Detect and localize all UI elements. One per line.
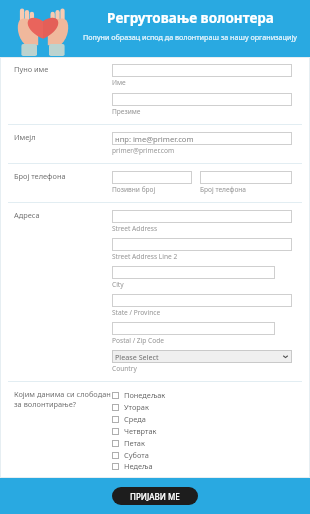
staticText: Којим данима си слободан за волонтирање?	[14, 389, 112, 409]
staticText: нпр: ime@primer.com	[115, 134, 194, 144]
button[interactable]	[112, 266, 275, 279]
button[interactable]	[200, 171, 292, 184]
staticText: Регрутовање волонтера	[107, 9, 274, 27]
staticText: Број телефона	[200, 185, 247, 194]
button[interactable]	[112, 64, 292, 77]
button[interactable]: Please Select	[112, 350, 292, 363]
staticText: Четвртак	[124, 426, 157, 436]
staticText: Country	[112, 364, 137, 373]
staticText: Адреса	[14, 210, 40, 220]
staticText: Позивни број	[112, 185, 156, 194]
button[interactable]: Понедељак	[112, 389, 302, 401]
button[interactable]: ПРИЈАВИ МЕ	[112, 487, 198, 505]
button[interactable]	[112, 210, 292, 223]
staticText: Имејл	[14, 132, 36, 142]
button[interactable]	[112, 294, 292, 307]
button[interactable]	[112, 238, 292, 251]
button[interactable]: Четвртак	[112, 425, 302, 437]
staticText: Please Select	[115, 352, 159, 362]
staticText: Уторак	[124, 402, 149, 412]
staticText: Број телефона	[14, 171, 66, 181]
staticText: Street Address Line 2	[112, 252, 178, 261]
staticText: Понедељак	[124, 390, 166, 400]
staticText: Субота	[124, 450, 149, 460]
button[interactable]: Уторак	[112, 401, 302, 413]
staticText: Петак	[124, 438, 145, 448]
staticText: Презиме	[112, 107, 141, 116]
button[interactable]: нпр: ime@primer.com	[112, 132, 292, 145]
staticText: Postal / Zip Code	[112, 336, 164, 345]
staticText: Попуни образац испод да волонтираш за на…	[83, 32, 297, 42]
button[interactable]	[112, 93, 292, 106]
button[interactable]: Недеља	[112, 461, 302, 471]
button[interactable]: Субота	[112, 449, 302, 461]
staticText: ПРИЈАВИ МЕ	[130, 491, 180, 502]
staticText: Име	[112, 78, 126, 87]
staticText: Street Address	[112, 224, 158, 233]
staticText: City	[112, 280, 124, 289]
button[interactable]: Среда	[112, 413, 302, 425]
other: Hands holding heart	[13, 2, 73, 56]
button[interactable]	[112, 322, 275, 335]
staticText: primer@primer.com	[112, 146, 175, 155]
button[interactable]	[112, 171, 192, 184]
staticText: Недеља	[124, 461, 153, 471]
button[interactable]: Петак	[112, 437, 302, 449]
staticText: Среда	[124, 414, 146, 424]
staticText: Пуно име	[14, 64, 49, 74]
staticText: State / Province	[112, 308, 161, 317]
